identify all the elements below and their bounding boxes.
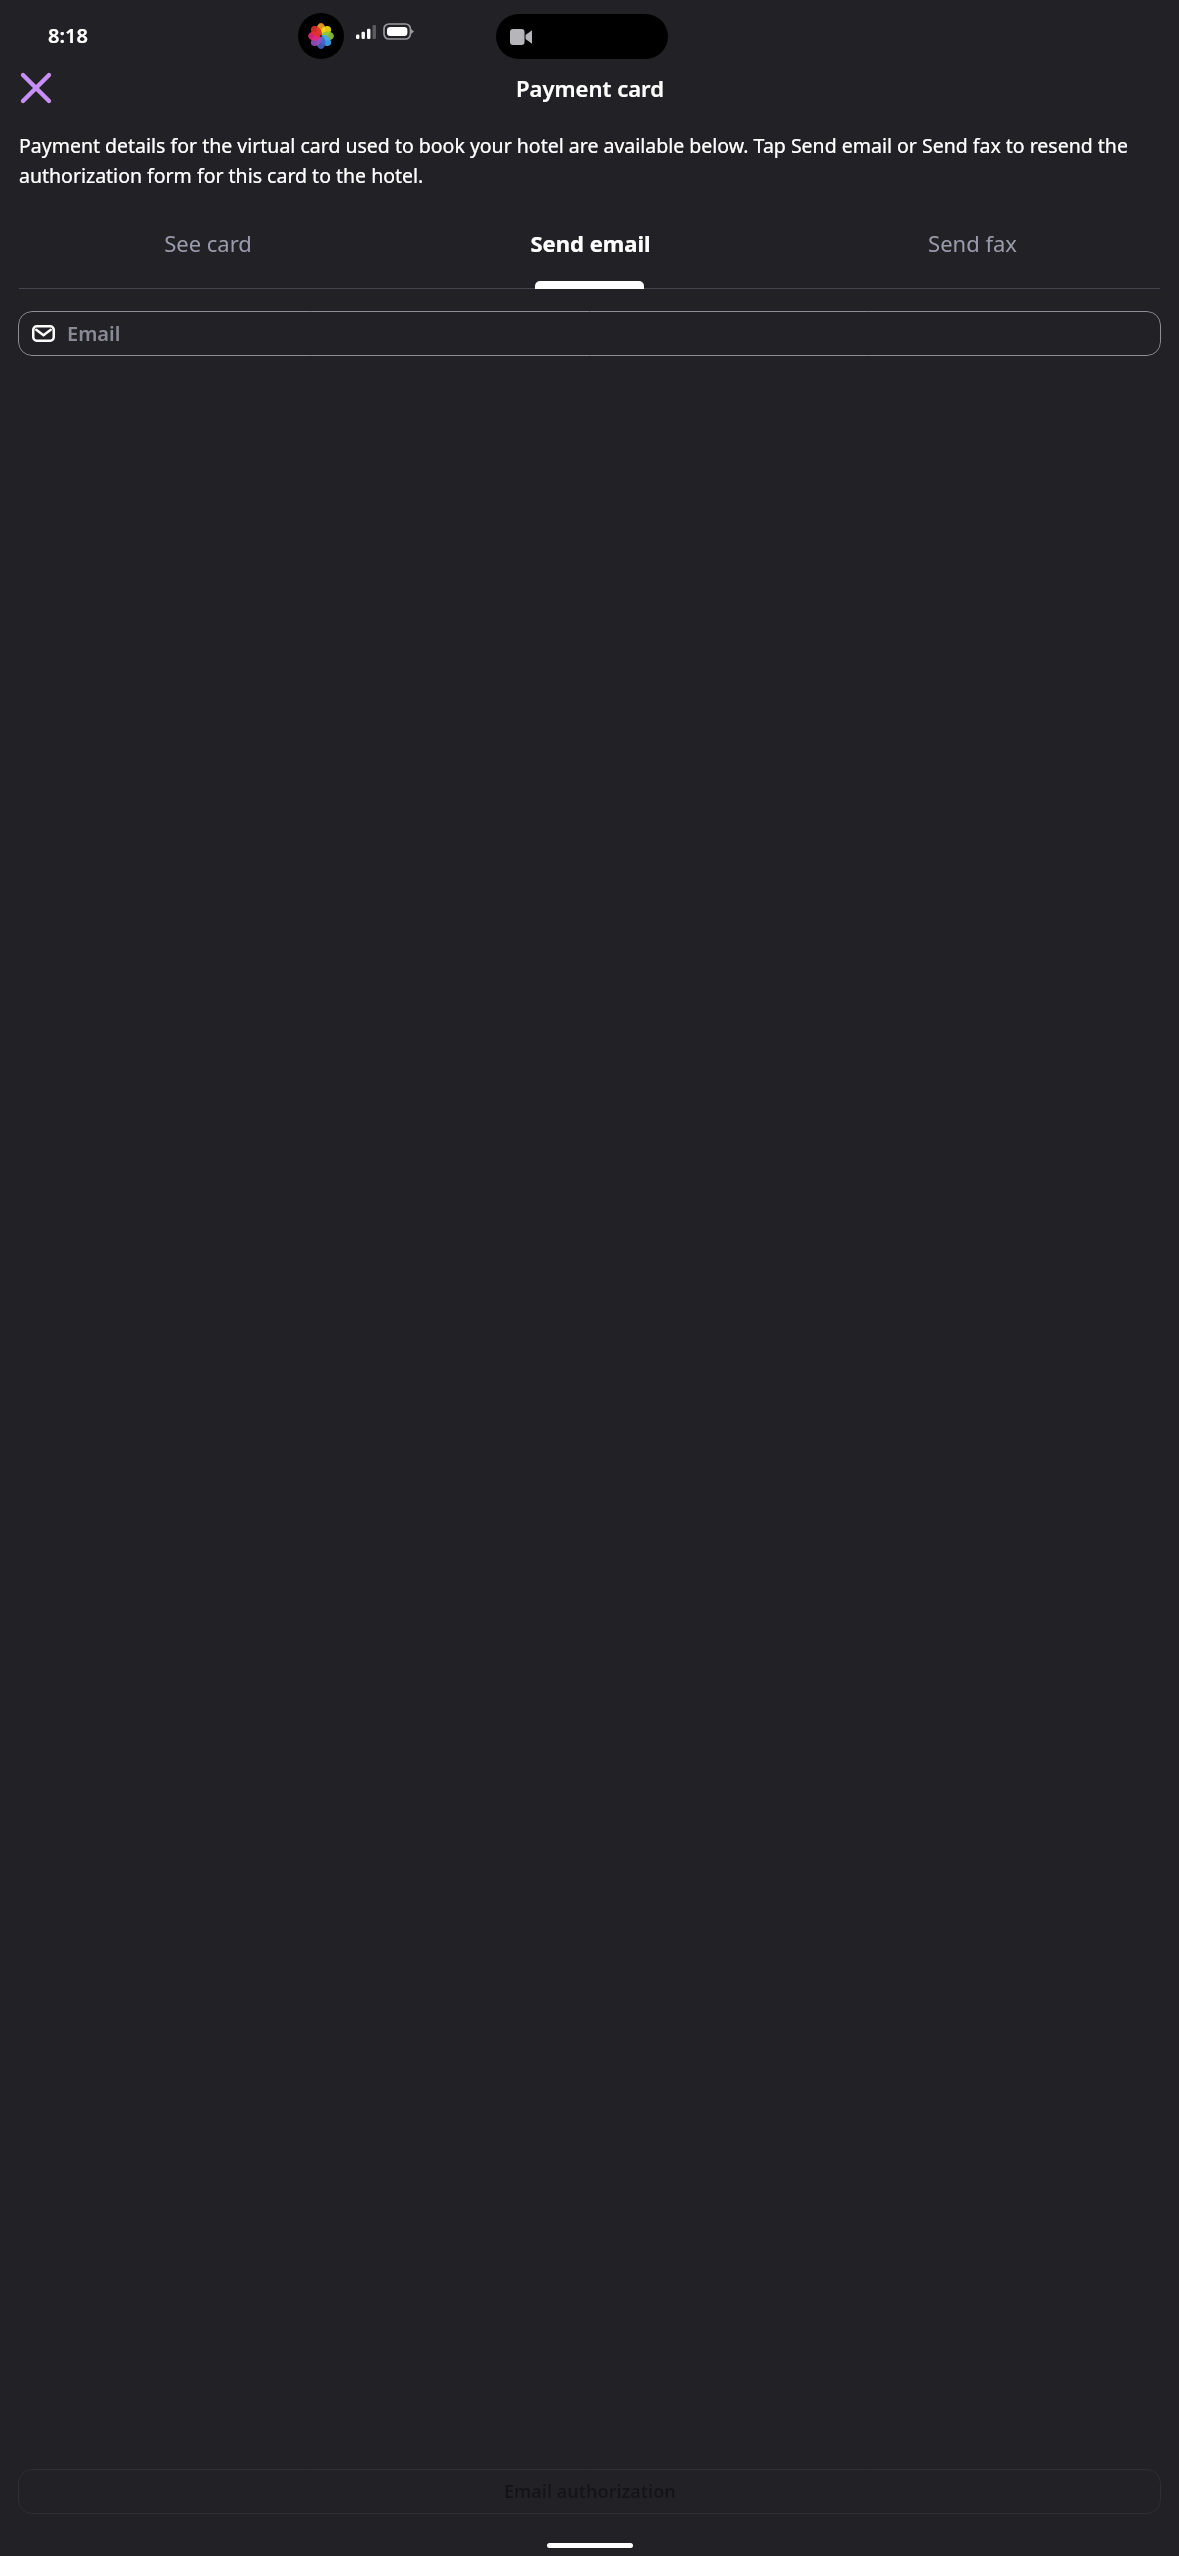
staticText: Payment details for the virtual card use… <box>19 132 1160 188</box>
staticText: Send email <box>530 228 651 258</box>
staticText: 8:18 <box>48 22 88 49</box>
staticText: Email authorization <box>504 2479 676 2504</box>
button[interactable]: Send fax <box>781 222 1163 264</box>
button[interactable]: Send email <box>399 222 781 264</box>
staticText: Email <box>67 320 121 347</box>
staticText: Payment card <box>516 73 664 103</box>
staticText: See card <box>164 228 252 258</box>
staticText: Send fax <box>928 228 1017 258</box>
button[interactable]: Email <box>18 311 1161 356</box>
button[interactable]: Close <box>10 62 62 114</box>
button[interactable]: See card <box>16 222 399 264</box>
button[interactable]: Email authorization <box>18 2469 1161 2514</box>
